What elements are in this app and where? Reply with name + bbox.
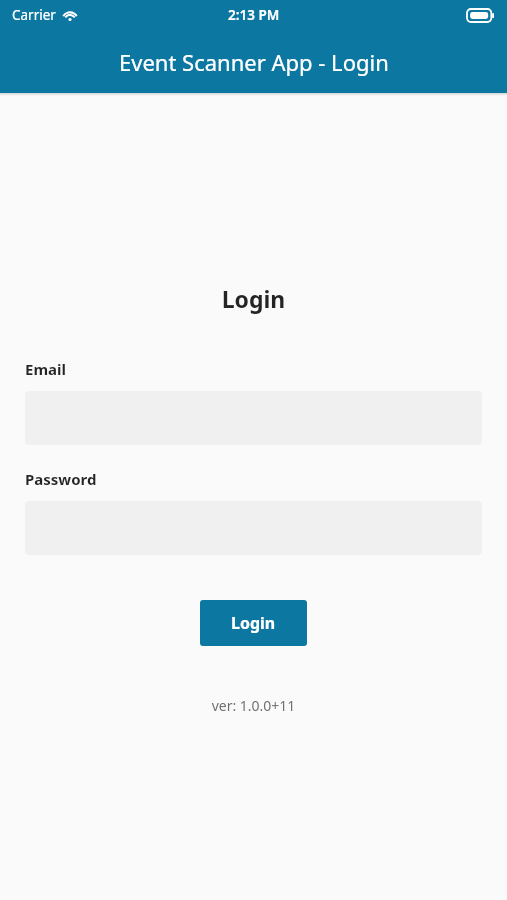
staticText: Login: [0, 283, 507, 314]
staticText: Email: [25, 359, 66, 379]
staticText: Carrier: [12, 6, 56, 24]
staticText: 2:13 PM: [228, 6, 280, 24]
staticText: ver: 1.0.0+11: [0, 696, 507, 715]
button[interactable]: Login: [200, 600, 307, 646]
staticText: Password: [25, 469, 97, 489]
staticText: Event Scanner App - Login: [119, 47, 389, 77]
staticText: Login: [231, 612, 276, 634]
